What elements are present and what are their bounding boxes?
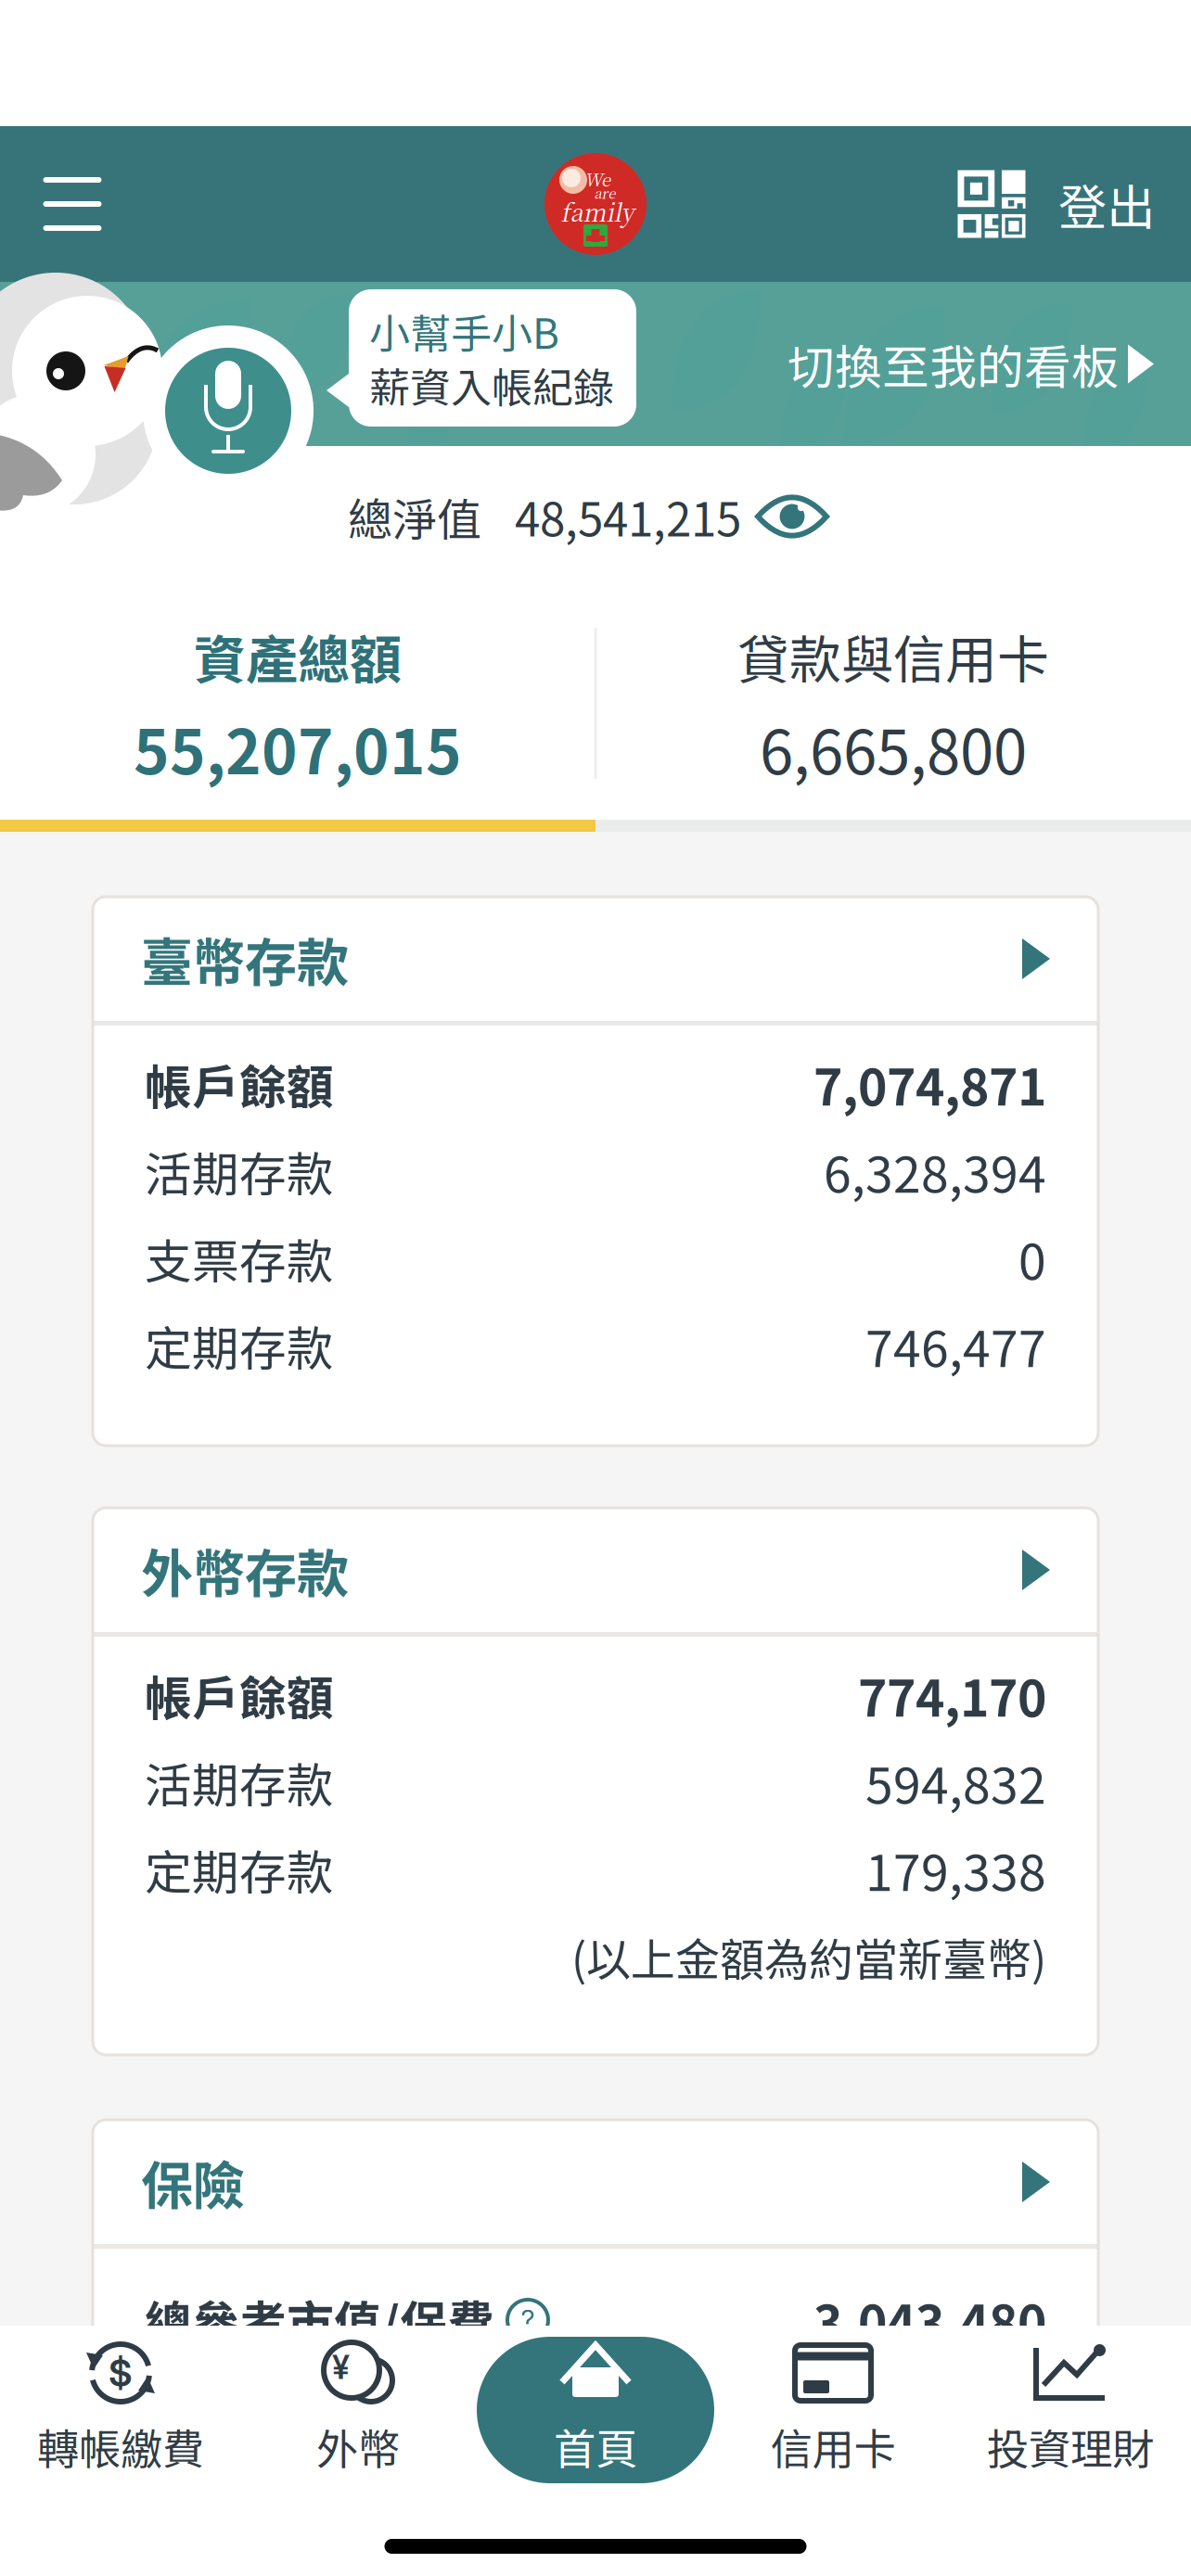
staticText: 轉帳繳費	[37, 2416, 204, 2477]
staticText: 55,207,015	[134, 704, 462, 792]
button[interactable]: 切換至我的看板	[788, 282, 1191, 446]
staticText: 6,665,800	[760, 704, 1027, 792]
button[interactable]: 臺幣存款	[93, 897, 1098, 1021]
staticText: family	[561, 195, 634, 228]
button[interactable]: 登出	[1038, 126, 1191, 282]
staticText: 746,477	[865, 1310, 1046, 1381]
button[interactable]: 保險	[93, 2120, 1098, 2244]
staticText: 179,338	[865, 1834, 1046, 1905]
button[interactable]: 外幣存款	[93, 1508, 1098, 1632]
staticText: We	[584, 167, 610, 191]
button[interactable]: ¥	[239, 2337, 477, 2483]
staticText: 活期存款	[145, 1748, 334, 1816]
staticText: 6,328,394	[824, 1135, 1046, 1207]
staticText: 首頁	[554, 2416, 637, 2477]
staticText: 總淨值	[348, 484, 481, 549]
staticText: 774,170	[858, 1659, 1046, 1731]
staticText: 帳戶餘額	[145, 1050, 334, 1118]
staticText: 48,541,215	[515, 483, 741, 550]
staticText: 資產總額	[194, 618, 402, 694]
staticText: 小幫手小B	[369, 301, 559, 361]
staticText: 支票存款	[145, 1224, 334, 1292]
button[interactable]: Help	[494, 2298, 550, 2342]
staticText: $	[109, 2350, 133, 2395]
staticText: 切換至我的看板	[788, 330, 1119, 398]
staticText: 登出	[1058, 169, 1155, 239]
button[interactable]: Voice assistant	[143, 325, 314, 496]
button[interactable]: 投資理財	[952, 2337, 1189, 2483]
staticText: 0	[1018, 1223, 1046, 1294]
staticText: 定期存款	[145, 1835, 334, 1903]
staticText: 7,074,871	[813, 1048, 1046, 1120]
staticText: ¥	[332, 2348, 350, 2387]
button[interactable]: Menu	[0, 126, 145, 282]
staticText: 3,043,480	[813, 2284, 1046, 2356]
staticText: 活期存款	[145, 1137, 334, 1205]
staticText: 信用卡	[770, 2416, 896, 2477]
button[interactable]: 首頁	[477, 2337, 714, 2483]
staticText: 臺幣存款	[141, 921, 349, 996]
staticText: 貸款與信用卡	[737, 618, 1049, 694]
staticText: 投資理財	[987, 2416, 1154, 2477]
button[interactable]: $	[2, 2337, 239, 2483]
staticText: (以上金額為約當新臺幣)	[571, 1924, 1046, 1989]
staticText: 總參考市值/保費	[145, 2286, 494, 2354]
staticText: 保險	[141, 2144, 245, 2220]
staticText: 定期存款	[145, 1311, 334, 1380]
staticText: 帳戶餘額	[145, 1661, 334, 1729]
staticText: 薪資入帳紀錄	[369, 355, 614, 414]
button[interactable]: Toggle balance visibility	[741, 479, 843, 554]
staticText: 外幣存款	[141, 1532, 349, 1608]
staticText: are	[594, 183, 615, 203]
staticText: 594,832	[865, 1746, 1046, 1818]
button[interactable]: 信用卡	[714, 2337, 952, 2483]
staticText: ?	[521, 2304, 535, 2337]
button[interactable]: QR code scanner	[945, 126, 1038, 282]
staticText: 外幣	[316, 2416, 400, 2477]
